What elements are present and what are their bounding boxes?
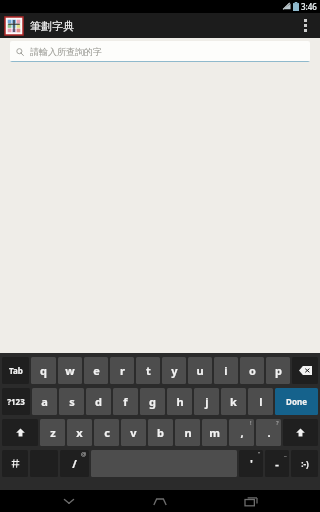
button[interactable]: Shift	[283, 419, 318, 446]
button[interactable]: Recents	[229, 490, 273, 512]
button[interactable]: '	[239, 450, 263, 477]
staticText: n	[184, 425, 192, 440]
staticText: l	[259, 394, 263, 409]
staticText: v	[130, 425, 137, 440]
button[interactable]: a	[32, 388, 57, 415]
button[interactable]: d	[86, 388, 111, 415]
button[interactable]: f	[113, 388, 138, 415]
button[interactable]: Shift	[2, 419, 38, 446]
button[interactable]: p	[266, 357, 290, 384]
button[interactable]: Backspace	[292, 357, 318, 384]
button[interactable]: /	[60, 450, 89, 477]
staticText: f	[123, 394, 128, 409]
staticText: !	[250, 419, 252, 427]
button[interactable]: h	[167, 388, 192, 415]
button[interactable]: i	[214, 357, 238, 384]
staticText: k	[230, 394, 237, 409]
staticText: j	[205, 394, 209, 409]
staticText: ,	[240, 425, 244, 440]
staticText: "	[258, 450, 261, 458]
button[interactable]: l	[248, 388, 273, 415]
staticText: w	[65, 363, 75, 378]
staticText: i	[224, 363, 228, 378]
staticText: 請輸入所查詢的字	[30, 46, 102, 57]
button[interactable]: .	[256, 419, 281, 446]
button[interactable]: Hide keyboard	[47, 490, 91, 512]
staticText: g	[149, 394, 156, 409]
staticText: :-)	[301, 458, 309, 469]
staticText: m	[209, 425, 220, 440]
staticText: a	[41, 394, 48, 409]
staticText: q	[40, 363, 47, 378]
button[interactable]: Home	[138, 490, 182, 512]
staticText: e	[93, 363, 100, 378]
button[interactable]: k	[221, 388, 246, 415]
staticText: Tab	[9, 365, 23, 376]
button[interactable]: r	[110, 357, 134, 384]
staticText: ?	[276, 419, 279, 427]
staticText: /	[72, 456, 77, 471]
staticText: p	[275, 363, 282, 378]
staticText: u	[196, 363, 204, 378]
button[interactable]: App icon	[4, 16, 23, 35]
staticText: t	[146, 363, 151, 378]
staticText: -	[275, 456, 279, 471]
staticText: s	[69, 394, 75, 409]
button[interactable]: o	[240, 357, 264, 384]
staticText: x	[76, 425, 83, 440]
button[interactable]: u	[188, 357, 212, 384]
staticText: '	[250, 456, 253, 471]
button[interactable]: e	[84, 357, 108, 384]
button[interactable]: Switch language	[2, 450, 28, 477]
button[interactable]: -	[265, 450, 289, 477]
staticText: c	[104, 425, 110, 440]
staticText: r	[120, 363, 125, 378]
button[interactable]: 請輸入所查詢的字	[10, 41, 310, 62]
staticText: o	[249, 363, 256, 378]
button[interactable]: x	[67, 419, 92, 446]
button[interactable]: g	[140, 388, 165, 415]
button[interactable]: j	[194, 388, 219, 415]
staticText: @	[81, 450, 87, 458]
staticText: ?123	[7, 396, 25, 407]
button[interactable]: z	[40, 419, 65, 446]
button[interactable]: q	[31, 357, 56, 384]
button[interactable]: w	[58, 357, 82, 384]
staticText: b	[157, 425, 164, 440]
button[interactable]: :-)	[291, 450, 318, 477]
button[interactable]: y	[162, 357, 186, 384]
button[interactable]: c	[94, 419, 119, 446]
staticText: y	[171, 363, 178, 378]
button[interactable]: ,	[229, 419, 254, 446]
button[interactable]: v	[121, 419, 146, 446]
staticText: .	[267, 425, 271, 440]
staticText: d	[95, 394, 102, 409]
staticText: z	[50, 425, 56, 440]
staticText: h	[176, 394, 184, 409]
button[interactable]: More options	[294, 13, 316, 38]
button[interactable]: Done	[275, 388, 318, 415]
staticText: _	[284, 450, 287, 458]
button[interactable]: ?123	[2, 388, 30, 415]
staticText: Done	[286, 396, 307, 407]
button[interactable]: t	[136, 357, 160, 384]
button[interactable]: n	[175, 419, 200, 446]
button[interactable]: m	[202, 419, 227, 446]
staticText: 3:46	[301, 1, 317, 12]
staticText: 筆劃字典	[30, 19, 74, 33]
button[interactable]: b	[148, 419, 173, 446]
button[interactable]: s	[59, 388, 84, 415]
button[interactable]: Tab	[2, 357, 29, 384]
